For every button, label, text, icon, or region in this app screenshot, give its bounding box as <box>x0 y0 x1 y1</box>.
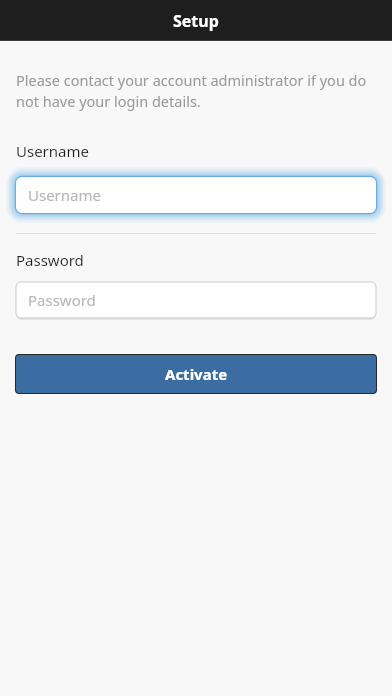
staticText: Password <box>16 250 84 270</box>
staticText: Activate <box>165 364 228 384</box>
button[interactable]: Username <box>0 171 392 219</box>
staticText: Password <box>28 290 96 310</box>
staticText: Setup <box>173 10 219 32</box>
staticText: Username <box>16 141 89 161</box>
staticText: Username <box>28 185 101 205</box>
staticText: Please contact your account administrato… <box>16 70 372 112</box>
button[interactable]: Activate <box>15 354 377 394</box>
button[interactable]: Password <box>0 280 392 320</box>
